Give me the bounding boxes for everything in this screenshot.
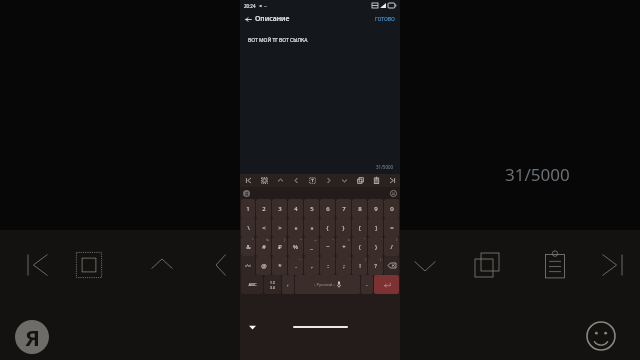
staticText: % xyxy=(293,243,298,251)
button[interactable]: Left xyxy=(288,174,304,187)
button[interactable]: 5 xyxy=(304,199,319,218)
button[interactable]: ; xyxy=(336,256,351,275)
button[interactable]: Clipboard xyxy=(368,174,384,187)
staticText: 0 xyxy=(390,205,394,213)
staticText: … xyxy=(299,257,302,261)
button[interactable]: * xyxy=(272,256,287,275)
staticText: ; xyxy=(343,262,345,270)
button[interactable]: 1 xyxy=(241,199,255,218)
button[interactable]: Up xyxy=(272,174,288,187)
button[interactable]: Copy xyxy=(470,248,504,282)
staticText: " xyxy=(364,238,366,242)
staticText: ВОТ МОЙ ТГ ВОТ СЫЛКА xyxy=(248,37,308,44)
button[interactable]: @ xyxy=(256,256,271,275)
button[interactable]: Enter xyxy=(374,275,399,294)
button[interactable]: ABC xyxy=(241,275,263,294)
staticText: 5 xyxy=(310,205,314,213)
button[interactable]: ] xyxy=(368,218,383,237)
staticText: · xyxy=(317,257,318,261)
button[interactable]: Back xyxy=(240,12,295,26)
button[interactable]: } xyxy=(336,218,351,237)
button[interactable]: . xyxy=(288,256,303,275)
button[interactable]: Select xyxy=(256,174,272,187)
button[interactable]: Up xyxy=(145,248,179,282)
staticText: ' xyxy=(381,238,382,242)
button[interactable]: ? xyxy=(368,256,383,275)
button[interactable]: ) xyxy=(368,237,383,256)
button[interactable]: % xyxy=(288,237,303,256)
staticText: # xyxy=(262,243,266,251)
button[interactable]: & xyxy=(241,237,255,256)
button[interactable]: Select xyxy=(72,248,106,282)
button[interactable]: ( xyxy=(352,237,367,256)
button[interactable]: 8 xyxy=(352,199,367,218)
button[interactable]: ‹ Русский › xyxy=(295,275,360,294)
staticText: < xyxy=(262,224,266,232)
button[interactable]: { xyxy=(320,218,335,237)
button[interactable]: « xyxy=(288,218,303,237)
button[interactable]: − xyxy=(320,237,335,256)
button[interactable]: ₽ xyxy=(272,237,287,256)
button[interactable]: Numbers xyxy=(264,275,281,294)
button[interactable]: Yandex keyboard settings xyxy=(15,320,49,354)
button[interactable]: End of text xyxy=(384,174,400,187)
button[interactable]: ГОТОВО xyxy=(370,13,400,26)
button[interactable]: 6 xyxy=(320,199,335,218)
staticText: 1 xyxy=(246,205,250,213)
button[interactable]: , xyxy=(304,256,319,275)
staticText: ··· xyxy=(264,4,268,9)
button[interactable]: [ xyxy=(352,218,367,237)
button[interactable]: Start of text xyxy=(240,174,256,187)
button[interactable]: 7 xyxy=(336,199,351,218)
button[interactable]: » xyxy=(304,218,319,237)
staticText: ± xyxy=(348,238,350,242)
staticText: & xyxy=(246,243,251,251)
button[interactable]: Backspace xyxy=(384,256,399,275)
button[interactable]: Emoji xyxy=(585,320,617,352)
button[interactable]: 9 xyxy=(368,199,383,218)
button[interactable]: Hide keyboard xyxy=(248,323,257,332)
staticText: ° xyxy=(252,238,254,242)
button[interactable]: / xyxy=(384,237,399,256)
staticText: ¡ xyxy=(365,257,366,261)
staticText: } xyxy=(342,224,345,232)
button[interactable]: : xyxy=(320,256,335,275)
button[interactable]: \ xyxy=(241,218,255,237)
button[interactable]: + xyxy=(336,237,351,256)
staticText: : xyxy=(327,262,329,270)
button[interactable]: Clipboard xyxy=(538,248,572,282)
button[interactable]: 3 xyxy=(272,199,287,218)
button[interactable]: 4 xyxy=(288,199,303,218)
button[interactable]: =\< xyxy=(241,256,255,275)
button[interactable]: # xyxy=(256,237,271,256)
button[interactable]: End of text xyxy=(596,248,630,282)
button[interactable]: . xyxy=(361,275,373,294)
button[interactable]: = xyxy=(384,218,399,237)
button[interactable]: Right xyxy=(320,174,336,187)
staticText: | xyxy=(284,238,286,242)
button[interactable]: < xyxy=(256,218,271,237)
button[interactable]: Left xyxy=(205,248,239,282)
button[interactable]: Translate xyxy=(304,174,320,187)
button[interactable]: Start of text xyxy=(20,248,54,282)
button[interactable]: , xyxy=(282,275,294,294)
button[interactable]: ! xyxy=(352,256,367,275)
button[interactable]: > xyxy=(272,218,287,237)
staticText: ГОТОВО xyxy=(375,16,395,23)
button[interactable]: 2 xyxy=(256,199,271,218)
staticText: ¿ xyxy=(380,257,382,261)
staticText: 3 xyxy=(278,205,282,213)
button[interactable]: 0 xyxy=(384,199,399,218)
button[interactable]: _ xyxy=(304,237,319,256)
other: Voice input xyxy=(337,281,341,288)
button[interactable]: Down xyxy=(336,174,352,187)
button[interactable]: Down xyxy=(408,248,442,282)
staticText: ? xyxy=(374,262,377,270)
button[interactable]: Yandex keyboard settings xyxy=(243,190,250,197)
button[interactable]: Emoji xyxy=(390,190,397,197)
staticText: \ xyxy=(396,238,398,242)
staticText: — xyxy=(314,238,318,242)
button[interactable]: Copy xyxy=(352,174,368,187)
staticText: 4 xyxy=(294,205,298,213)
staticText: 31/5000 xyxy=(376,164,394,170)
